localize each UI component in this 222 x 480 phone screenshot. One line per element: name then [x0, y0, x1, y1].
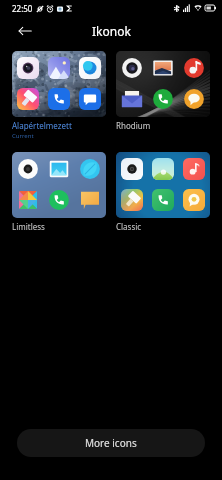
- button[interactable]: More icons: [17, 429, 205, 457]
- staticText: 22:50: [12, 3, 33, 14]
- staticText: Current: [12, 132, 34, 140]
- button[interactable]: Classic: [116, 152, 210, 232]
- button[interactable]: Alapértelmezett: [12, 51, 106, 140]
- staticText: More icons: [85, 436, 137, 450]
- staticText: Ikonok: [92, 23, 131, 39]
- button[interactable]: Rhodium: [116, 51, 210, 131]
- staticText: Limitless: [12, 221, 45, 232]
- staticText: Rhodium: [116, 120, 151, 131]
- staticText: Classic: [116, 221, 142, 232]
- staticText: Alapértelmezett: [12, 120, 72, 131]
- button[interactable]: Back: [12, 18, 38, 44]
- button[interactable]: Limitless: [12, 152, 106, 232]
